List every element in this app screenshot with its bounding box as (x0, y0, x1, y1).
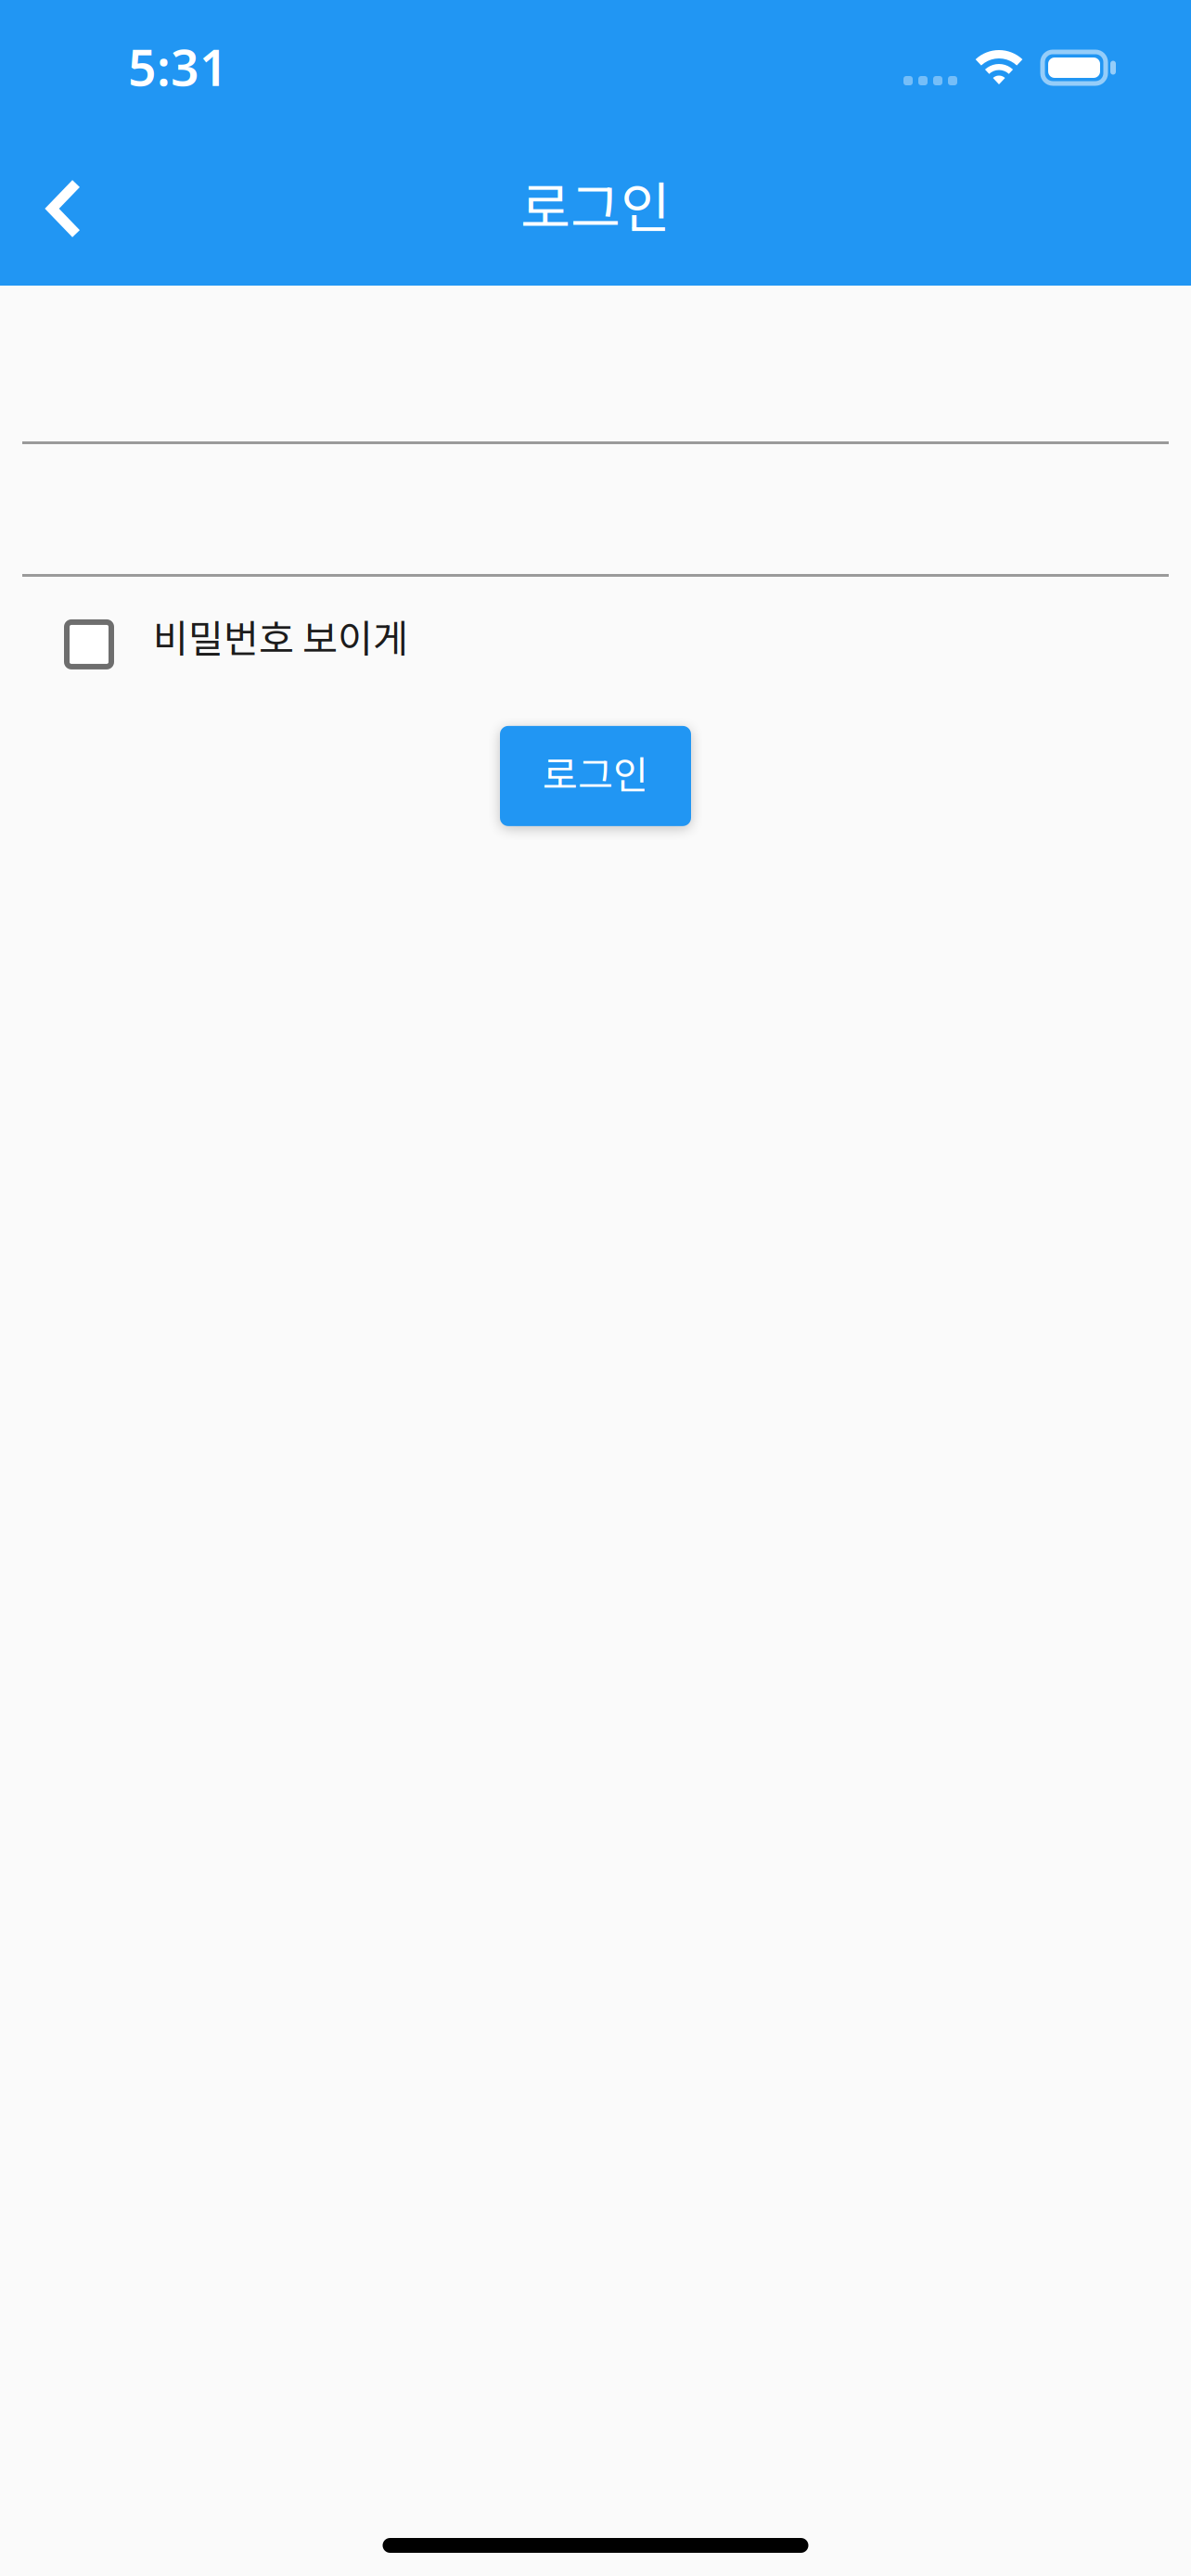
staticText: 5:31 (128, 34, 228, 100)
staticText: 비밀번호 보이게 (153, 608, 408, 664)
staticText: 로그인 (520, 165, 671, 243)
button[interactable]: 로그인 (500, 726, 691, 826)
button[interactable]: 비밀번호 (22, 444, 1169, 577)
staticText: 로그인 (543, 745, 648, 800)
button[interactable]: Back (0, 147, 115, 261)
button[interactable]: 아이디 (22, 312, 1169, 444)
button[interactable]: 비밀번호 보이게 (0, 577, 1191, 689)
